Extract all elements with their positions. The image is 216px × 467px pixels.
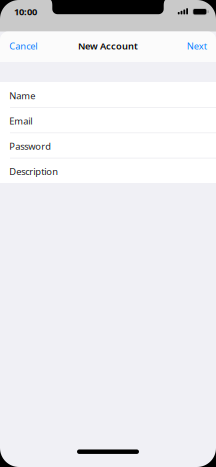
- button[interactable]: Description: [0, 158, 216, 183]
- button[interactable]: Next: [147, 36, 207, 56]
- button[interactable]: Name: [0, 82, 216, 107]
- staticText: Password: [9, 140, 51, 152]
- button[interactable]: Email: [0, 107, 216, 132]
- staticText: Description: [9, 165, 58, 178]
- staticText: 10:00: [14, 5, 37, 18]
- staticText: New Account: [78, 40, 138, 52]
- staticText: Email: [9, 115, 32, 127]
- staticText: Next: [187, 40, 207, 52]
- button[interactable]: Cancel: [9, 36, 69, 56]
- button[interactable]: Password: [0, 132, 216, 158]
- staticText: Cancel: [9, 40, 37, 52]
- staticText: Name: [9, 89, 35, 102]
